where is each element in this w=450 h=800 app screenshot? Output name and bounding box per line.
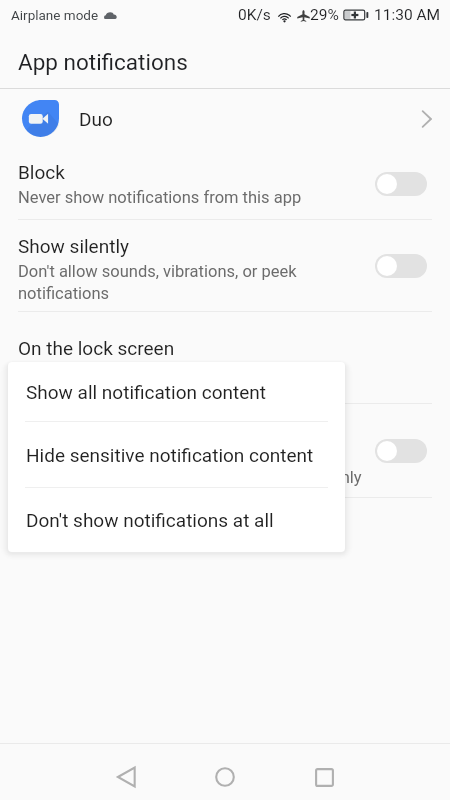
staticText: Duo bbox=[79, 108, 113, 130]
button[interactable]: Hide sensitive notification content bbox=[8, 422, 345, 487]
staticText: 0K/s bbox=[238, 6, 271, 24]
staticText: Show all notification content bbox=[18, 370, 227, 389]
button[interactable]: Recents bbox=[289, 755, 359, 799]
button[interactable]: Show silently bbox=[0, 220, 450, 311]
staticText: Show silently bbox=[18, 235, 130, 257]
staticText: Let these notifications continue to inte… bbox=[18, 446, 362, 487]
staticText: Airplane mode bbox=[11, 7, 99, 23]
button[interactable]: Home bbox=[190, 755, 260, 799]
button[interactable]: On the lock screen bbox=[0, 312, 450, 403]
staticText: Show all notification content bbox=[26, 381, 266, 403]
staticText: 29% bbox=[310, 6, 339, 24]
button[interactable]: Override Do Not Disturb bbox=[0, 404, 450, 497]
button[interactable]: Toggle bbox=[375, 172, 427, 196]
staticText: Block bbox=[18, 161, 65, 183]
staticText: Never show notifications from this app bbox=[18, 188, 302, 207]
button[interactable]: Show all notification content bbox=[8, 362, 345, 421]
staticText: App notifications bbox=[18, 49, 188, 75]
staticText: Don't show notifications at all bbox=[26, 509, 274, 531]
staticText: Don't allow sounds, vibrations, or peek … bbox=[18, 262, 297, 303]
button[interactable]: Don't show notifications at all bbox=[8, 488, 345, 552]
button[interactable]: Toggle bbox=[375, 254, 427, 278]
staticText: Override Do Not Disturb bbox=[18, 419, 218, 441]
button[interactable]: Toggle bbox=[375, 439, 427, 463]
staticText: 11:30 AM bbox=[374, 6, 441, 24]
staticText: Hide sensitive notification content bbox=[26, 444, 314, 466]
button[interactable]: Back bbox=[91, 755, 161, 799]
staticText: On the lock screen bbox=[18, 337, 175, 359]
button[interactable]: Block bbox=[0, 148, 450, 219]
button[interactable]: Duo bbox=[0, 89, 450, 148]
